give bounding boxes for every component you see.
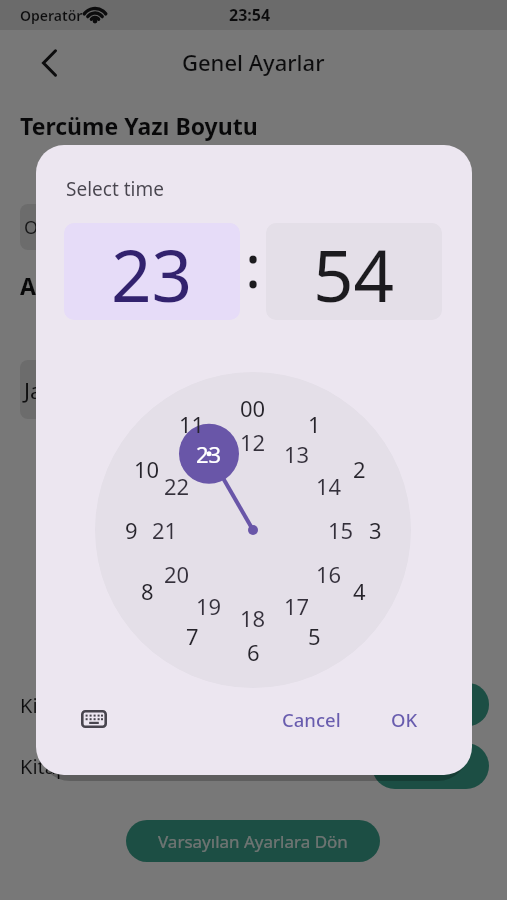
staticText: Varsayılan Ayarlara Dön [158,830,348,853]
button[interactable]: Cancel [263,699,359,739]
staticText: 20 [164,559,190,589]
staticText: 11 [179,409,205,439]
button[interactable] [380,683,489,726]
staticText: Jawi [24,375,66,405]
staticText: 6 [247,637,260,667]
staticText: Tercüme Yazı Boyutu [20,110,258,141]
button[interactable]: Varsayılan Ayarlara Dön [126,820,380,862]
button[interactable]: 54 [266,223,442,320]
staticText: 16 [316,559,342,589]
staticText: Arayüz Dili [20,270,143,301]
staticText: 17 [284,591,310,621]
button[interactable]: Jawi [20,360,250,419]
staticText: Cancel [282,707,341,732]
staticText: Select time [66,176,164,202]
staticText: 8 [141,576,154,606]
staticText: 23:54 [229,4,271,26]
staticText: 00 [240,393,266,423]
button[interactable]: Orta [20,204,250,250]
staticText: Kitap Modu [20,692,129,719]
staticText: 21 [152,515,178,545]
button[interactable]: OK [372,699,436,739]
button[interactable]: 23 [64,223,240,320]
staticText: 18 [240,603,266,633]
staticText: 19 [196,591,222,621]
button[interactable] [372,743,489,789]
staticText: 3 [369,515,382,545]
staticText: 22 [164,471,190,501]
staticText: Kitap Dili [20,753,104,780]
staticText: 54 [313,226,395,320]
staticText: 5 [308,621,321,651]
staticText: Operatör [20,6,83,25]
staticText: 14 [316,471,342,501]
staticText: 10 [134,454,160,484]
staticText: 2 [353,454,366,484]
staticText: OK [391,707,418,732]
staticText: 4 [353,576,366,606]
staticText: Orta [24,215,63,240]
button[interactable] [34,46,66,80]
staticText: 7 [186,621,199,651]
staticText: : [245,224,262,306]
staticText: 23 [111,226,193,320]
button[interactable] [73,698,114,739]
staticText: 13 [284,439,310,469]
staticText: 9 [125,515,138,545]
staticText: 23 [196,439,222,469]
staticText: Genel Ayarlar [182,47,325,77]
staticText: 15 [328,515,354,545]
staticText: 12 [240,427,266,457]
staticText: 1 [308,409,321,439]
